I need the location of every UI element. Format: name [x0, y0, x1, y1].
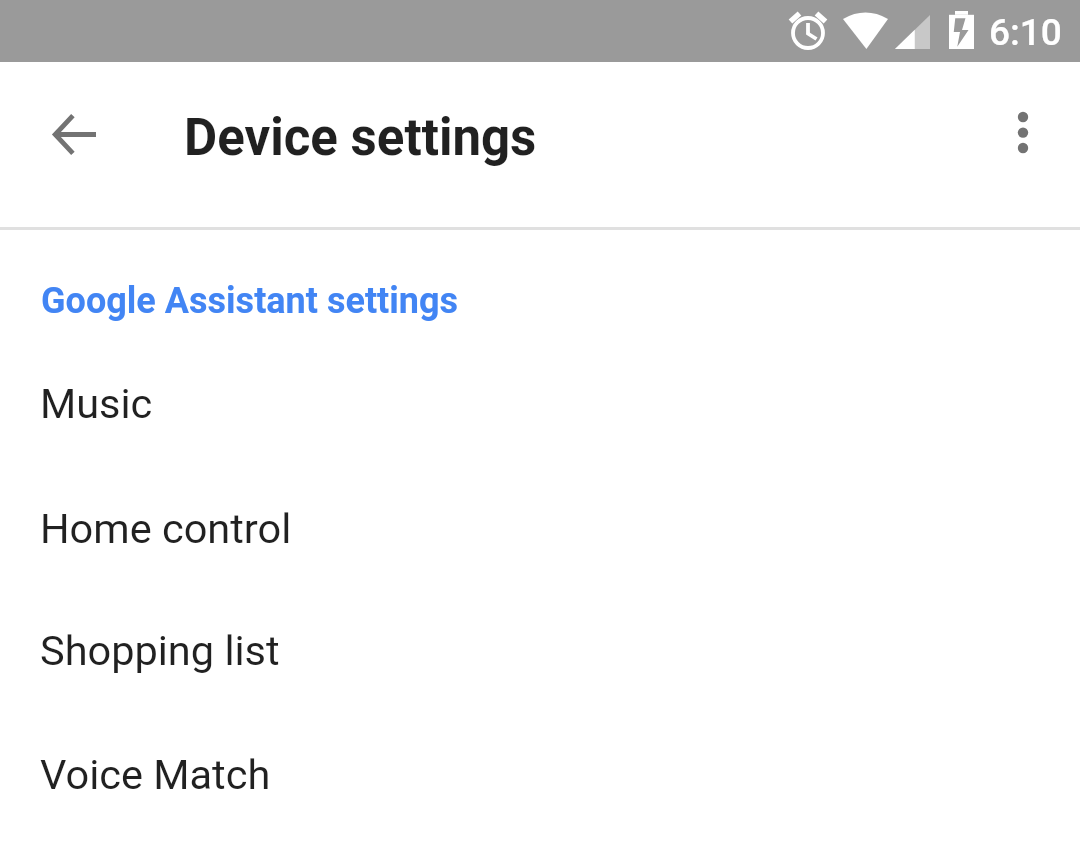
button[interactable]: Voice Match	[0, 698, 1080, 820]
staticText: Voice Match	[40, 750, 271, 799]
button[interactable]: Shopping list	[0, 574, 1080, 696]
staticText: 6:10	[989, 11, 1062, 54]
staticText: Shopping list	[40, 626, 280, 675]
button[interactable]: Music	[0, 327, 1080, 449]
button[interactable]: More options	[979, 90, 1067, 178]
button[interactable]: Navigate up	[31, 90, 119, 178]
staticText: Music	[40, 379, 153, 428]
button[interactable]: Google Assistant settings	[0, 240, 1080, 332]
staticText: Google Assistant settings	[41, 280, 459, 322]
staticText: Home control	[40, 504, 292, 553]
button[interactable]: Home control	[0, 452, 1080, 574]
staticText: Device settings	[184, 108, 537, 168]
